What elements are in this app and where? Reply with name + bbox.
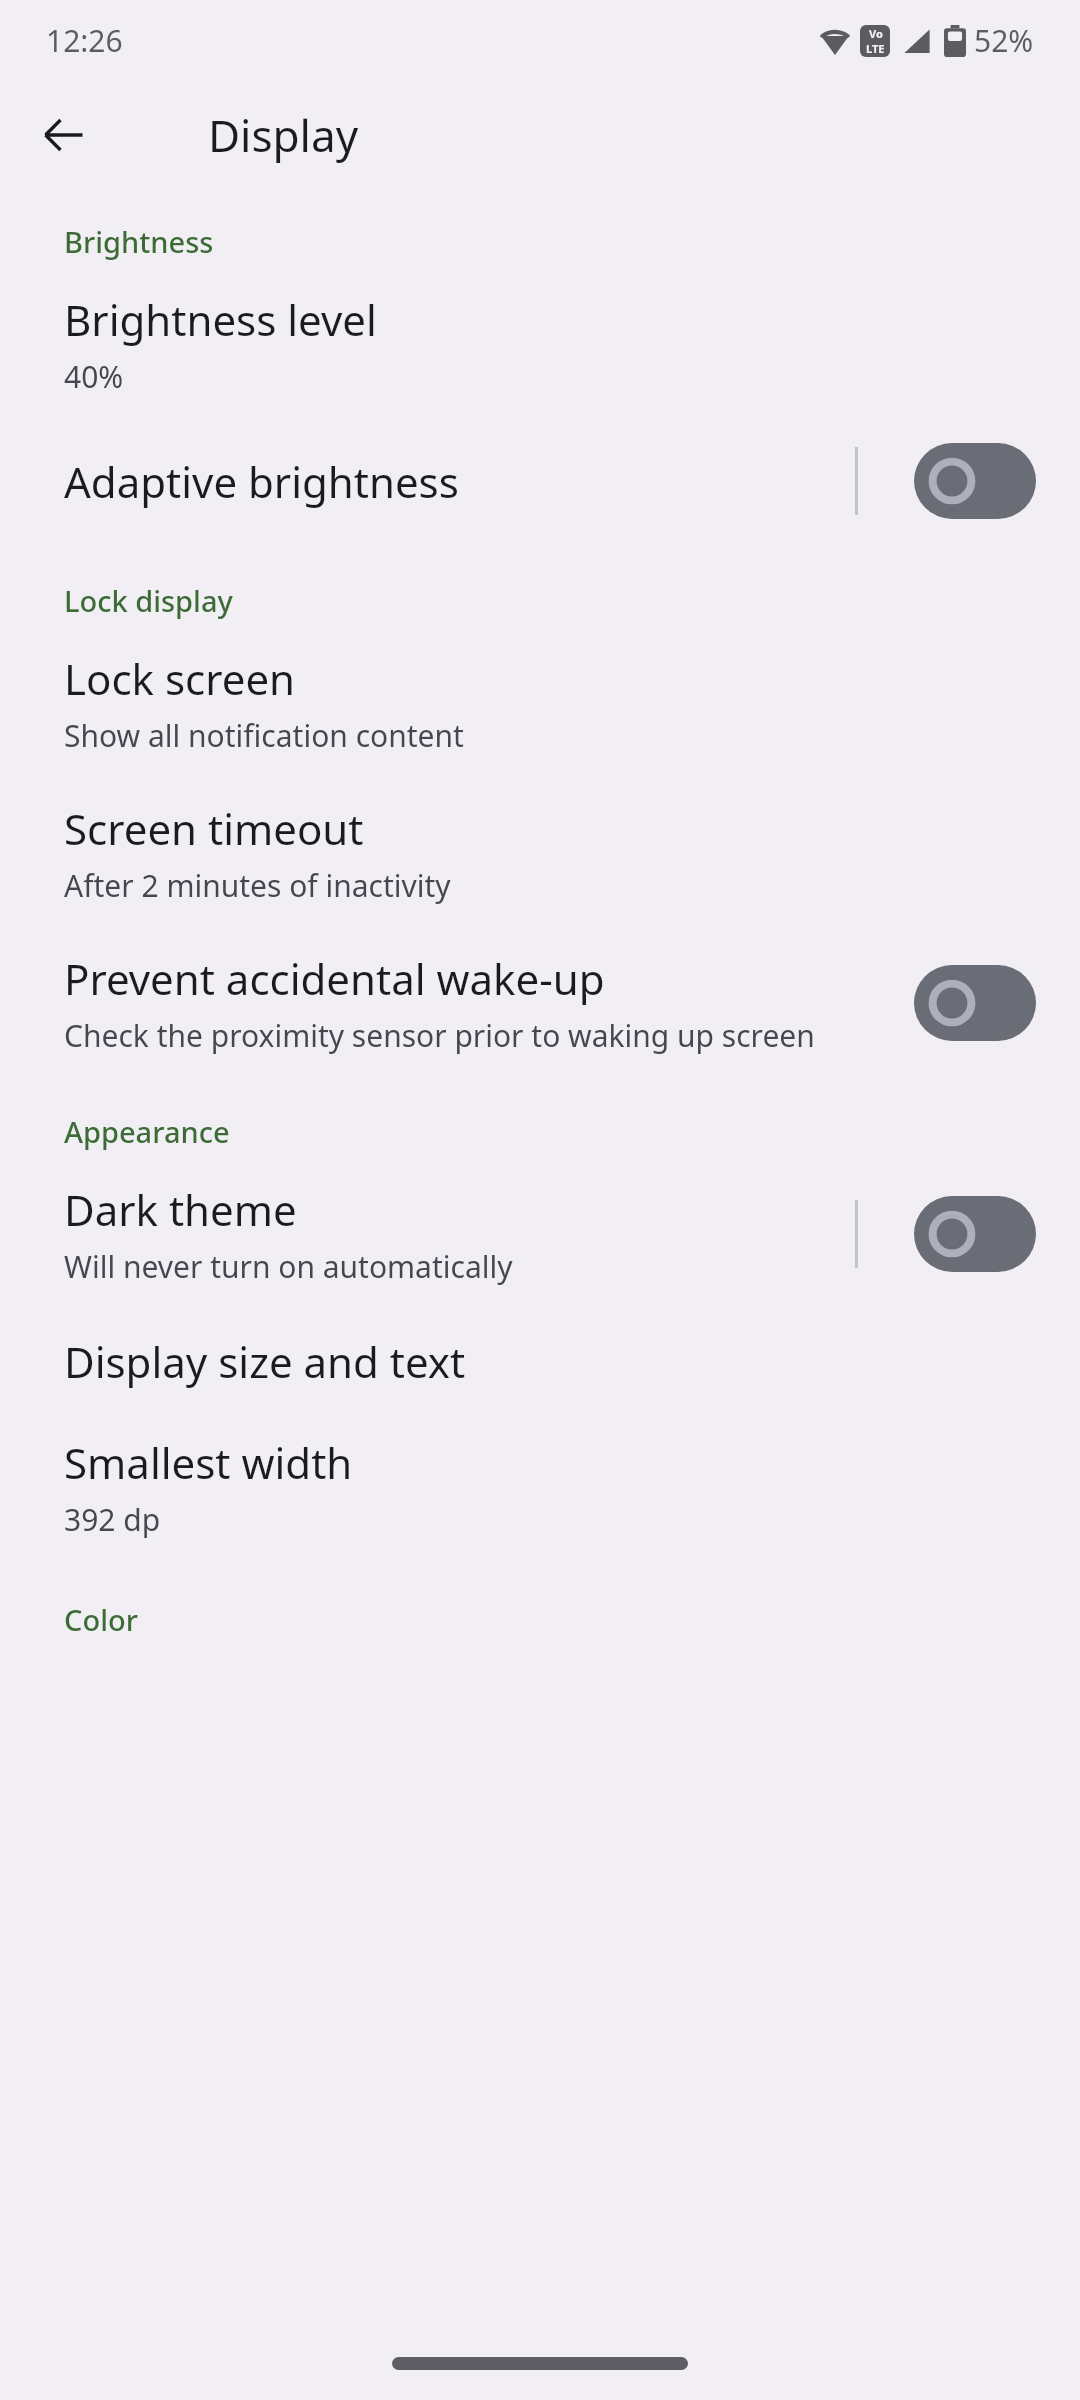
- staticText: Color: [64, 1600, 138, 1639]
- staticText: Display: [208, 105, 359, 165]
- staticText: Lock display: [64, 581, 233, 620]
- staticText: Brightness: [64, 222, 214, 261]
- button[interactable]: Toggle Dark theme: [914, 1196, 1036, 1272]
- button[interactable]: Lock screen: [0, 650, 1080, 756]
- staticText: Lock screen: [64, 650, 296, 707]
- button[interactable]: Toggle Prevent accidental wake-up: [914, 965, 1036, 1041]
- staticText: After 2 minutes of inactivity: [64, 865, 451, 906]
- staticText: 52%: [974, 20, 1034, 61]
- staticText: Will never turn on automatically: [64, 1246, 513, 1287]
- button[interactable]: Smallest width: [0, 1434, 1080, 1540]
- button[interactable]: Screen timeout: [0, 800, 1080, 906]
- staticText: Adaptive brightness: [64, 453, 459, 510]
- staticText: Check the proximity sensor prior to waki…: [64, 1015, 815, 1056]
- button[interactable]: Display size and text: [0, 1333, 1080, 1390]
- staticText: Prevent accidental wake-up: [64, 950, 605, 1007]
- staticText: Vo: [869, 26, 883, 41]
- button[interactable]: Dark theme: [0, 1181, 1080, 1287]
- staticText: Display size and text: [64, 1333, 466, 1390]
- staticText: 40%: [64, 356, 124, 397]
- staticText: Screen timeout: [64, 800, 364, 857]
- button[interactable]: Back: [24, 95, 104, 175]
- staticText: Dark theme: [64, 1181, 297, 1238]
- button[interactable]: Prevent accidental wake-up: [0, 950, 1080, 1056]
- staticText: 392 dp: [64, 1499, 161, 1540]
- staticText: Appearance: [64, 1112, 230, 1151]
- staticText: LTE: [866, 41, 885, 56]
- button[interactable]: Toggle Adaptive brightness: [914, 443, 1036, 519]
- staticText: Brightness level: [64, 291, 377, 348]
- button[interactable]: Adaptive brightness: [0, 443, 1080, 519]
- button[interactable]: Brightness level: [0, 291, 1080, 397]
- staticText: Show all notification content: [64, 715, 464, 756]
- staticText: Smallest width: [64, 1434, 353, 1491]
- staticText: 12:26: [46, 20, 123, 61]
